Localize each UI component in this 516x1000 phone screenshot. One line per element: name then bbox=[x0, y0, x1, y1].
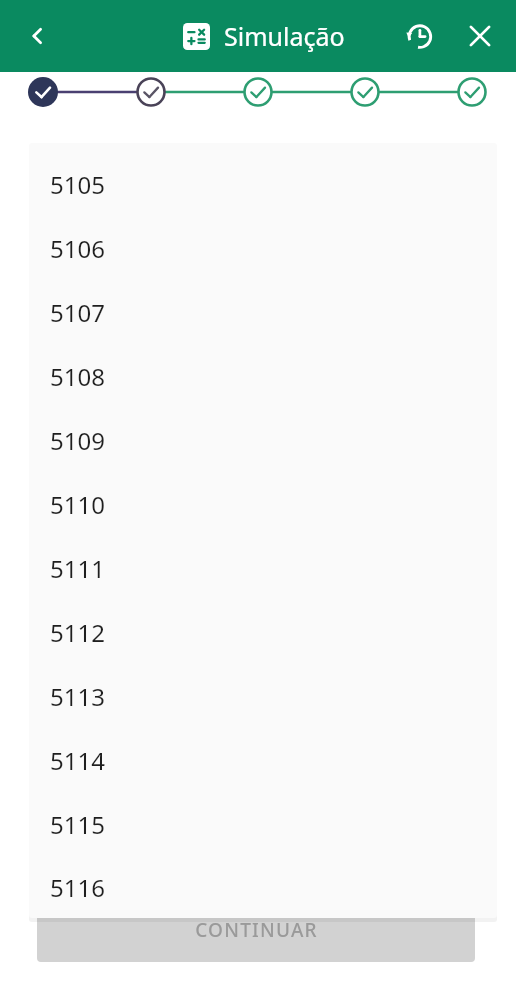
button[interactable]: 5113 bbox=[29, 664, 497, 728]
button[interactable]: 5110 bbox=[29, 472, 497, 536]
button[interactable]: 5116 bbox=[29, 856, 497, 918]
button[interactable]: Histórico bbox=[393, 10, 445, 62]
button[interactable]: Voltar bbox=[12, 10, 64, 62]
button[interactable]: Fechar bbox=[454, 10, 506, 62]
staticText: 5115 bbox=[50, 808, 105, 841]
staticText: 5110 bbox=[50, 488, 105, 521]
button[interactable]: 5112 bbox=[29, 600, 497, 664]
staticText: 5114 bbox=[50, 744, 105, 777]
button[interactable]: 5111 bbox=[29, 536, 497, 600]
staticText: CONTINUAR bbox=[195, 917, 318, 943]
button[interactable]: 5107 bbox=[29, 280, 497, 344]
staticText: 5106 bbox=[50, 232, 105, 265]
staticText: 5113 bbox=[50, 680, 105, 713]
staticText: 5112 bbox=[50, 616, 105, 649]
staticText: 5107 bbox=[50, 296, 105, 329]
button[interactable]: 5114 bbox=[29, 728, 497, 792]
button[interactable]: 5109 bbox=[29, 408, 497, 472]
button[interactable]: 5105 bbox=[29, 152, 497, 216]
staticText: 5111 bbox=[50, 552, 105, 585]
staticText: 5105 bbox=[50, 168, 105, 201]
staticText: 5108 bbox=[50, 360, 105, 393]
button[interactable]: 5115 bbox=[29, 792, 497, 856]
button[interactable]: CONTINUAR bbox=[37, 898, 475, 962]
staticText: 5116 bbox=[50, 871, 105, 904]
button[interactable]: 5108 bbox=[29, 344, 497, 408]
staticText: 5109 bbox=[50, 424, 105, 457]
staticText: Simulação bbox=[224, 19, 345, 53]
button[interactable]: 5106 bbox=[29, 216, 497, 280]
